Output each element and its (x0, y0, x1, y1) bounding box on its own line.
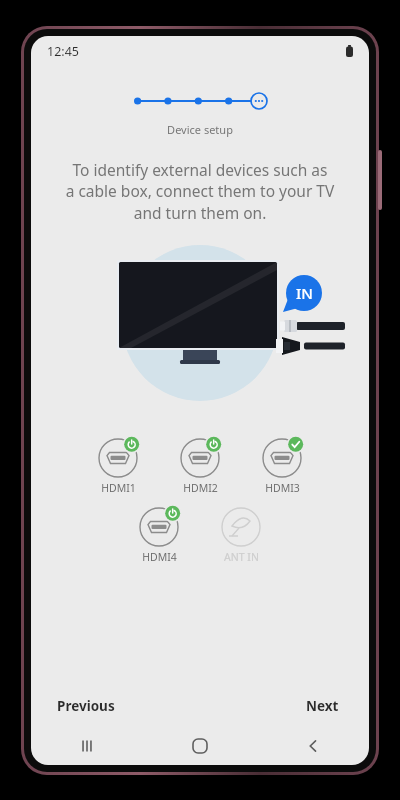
button[interactable]: HDMI2 (169, 436, 231, 495)
button[interactable]: Previous (51, 693, 121, 719)
staticText: HDMI2 (183, 481, 218, 495)
button[interactable]: HDMI3 (251, 436, 313, 495)
staticText: To identify external devices such as a c… (47, 159, 353, 224)
staticText: Device setup (31, 122, 369, 137)
staticText: 12:45 (47, 43, 79, 60)
button[interactable]: Recent apps (31, 727, 143, 765)
staticText: HDMI3 (265, 481, 300, 495)
button[interactable]: Home (143, 727, 256, 765)
button[interactable]: Back (256, 727, 369, 765)
other: Power button (378, 150, 382, 210)
button[interactable]: HDMI4 (128, 505, 190, 564)
button[interactable]: Next (300, 693, 345, 719)
staticText: IN (296, 283, 313, 303)
staticText: Next (306, 697, 339, 715)
staticText: Previous (57, 697, 115, 715)
staticText: HDMI1 (101, 481, 136, 495)
staticText: ANT IN (224, 550, 259, 564)
button[interactable]: ANT IN (210, 505, 272, 564)
staticText: HDMI4 (142, 550, 177, 564)
button[interactable]: HDMI1 (87, 436, 149, 495)
